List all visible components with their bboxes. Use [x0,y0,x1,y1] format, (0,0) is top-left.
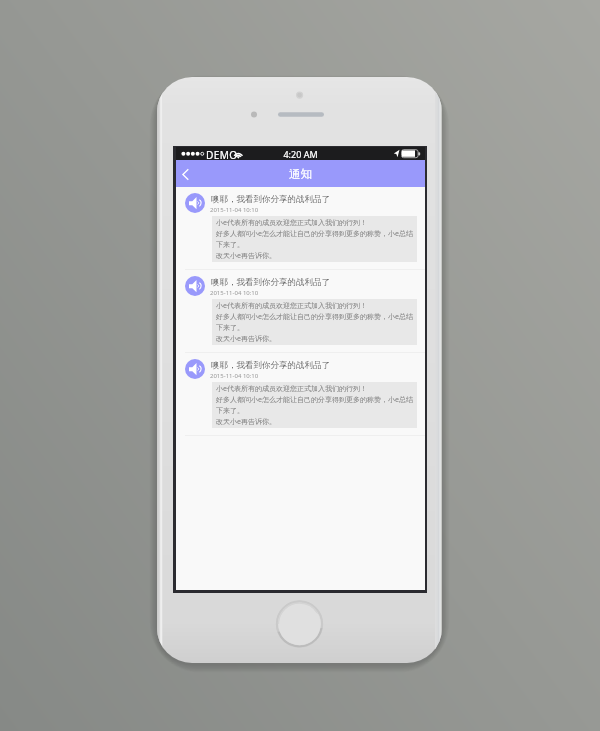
button[interactable]: Back [176,160,200,187]
staticText: 2015-11-04 10:10 [210,372,259,380]
staticText: 4:20 AM [176,148,425,160]
staticText: 2015-11-04 10:10 [210,289,259,297]
staticText: 小e代表所有的成员欢迎您正式加入我们的行列！ 好多人都问小e怎么才能让自己的分享… [216,384,413,426]
staticText: 2015-11-04 10:10 [210,206,259,214]
staticText: 噢耶，我看到你分享的战利品了 [211,360,330,371]
staticText: 小e代表所有的成员欢迎您正式加入我们的行列！ 好多人都问小e怎么才能让自己的分享… [216,218,413,260]
staticText: 小e代表所有的成员欢迎您正式加入我们的行列！ 好多人都问小e怎么才能让自己的分享… [216,301,413,343]
button[interactable]: 噢耶，我看到你分享的战利品了 [176,270,425,353]
button[interactable]: 噢耶，我看到你分享的战利品了 [176,353,425,436]
staticText: 通知 [176,167,425,181]
staticText: 噢耶，我看到你分享的战利品了 [211,194,330,205]
staticText: 噢耶，我看到你分享的战利品了 [211,277,330,288]
staticText: DEMO [206,148,238,161]
button[interactable]: 噢耶，我看到你分享的战利品了 [176,187,425,270]
